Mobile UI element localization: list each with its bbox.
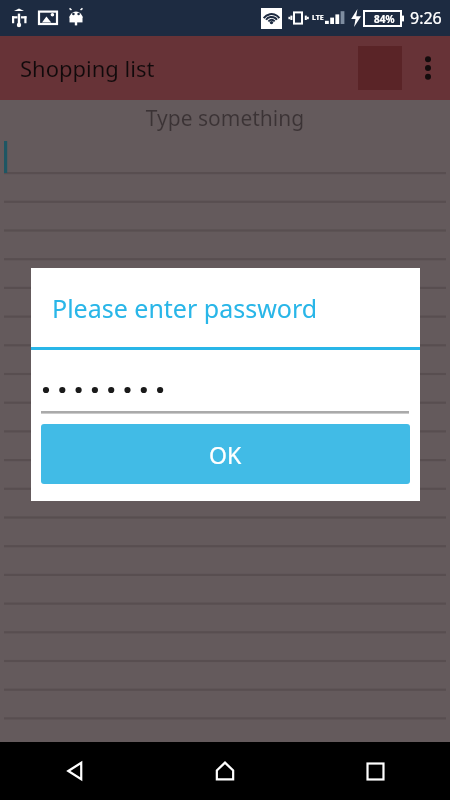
button[interactable]: Home bbox=[150, 742, 300, 800]
staticText: Type something bbox=[0, 104, 450, 133]
button[interactable]: More options bbox=[406, 46, 450, 90]
staticText: 9:26 bbox=[410, 7, 442, 29]
button[interactable]: Back bbox=[0, 742, 150, 800]
button[interactable]: Recent apps bbox=[300, 742, 450, 800]
staticText: Please enter password bbox=[52, 291, 318, 325]
staticText: Shopping list bbox=[20, 53, 155, 83]
staticText: OK bbox=[209, 439, 242, 470]
staticText: 84% bbox=[374, 12, 395, 26]
staticText: LTE bbox=[312, 13, 324, 23]
button[interactable] bbox=[31, 350, 420, 414]
button[interactable]: OK bbox=[41, 424, 410, 484]
